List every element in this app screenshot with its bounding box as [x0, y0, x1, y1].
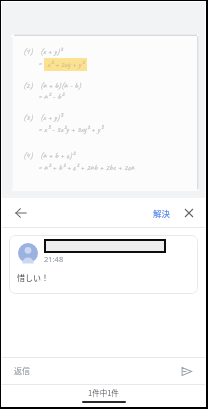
staticText: 21:48: [44, 254, 64, 264]
staticText: (x + y)³: [40, 112, 63, 123]
staticText: 惜しい！: [17, 272, 49, 284]
staticText: 1件中1件: [88, 387, 119, 398]
staticText: (a + b)(a - b): [40, 80, 81, 91]
staticText: (3): [23, 112, 33, 123]
staticText: (x + y)²: [40, 46, 63, 57]
staticText: (4): [23, 150, 33, 161]
button[interactable]: Send: [177, 362, 195, 380]
staticText: = a² + b² + c² + 2ab + 2bc + 2ca: [38, 162, 135, 173]
staticText: (a + b + c)²: [40, 150, 75, 161]
button[interactable]: 解決: [149, 203, 175, 223]
staticText: = x³ - 3x²y + 3xy² + y³: [38, 124, 103, 135]
staticText: 解決: [153, 207, 171, 219]
button[interactable]: Back: [11, 203, 31, 223]
staticText: = a² - b²: [38, 91, 64, 102]
staticText: (2): [23, 80, 33, 91]
staticText: (1): [23, 46, 33, 57]
staticText: 返信: [14, 365, 30, 377]
button[interactable]: Close: [181, 205, 197, 221]
staticText: x² + 2xy + y²: [47, 59, 84, 70]
staticText: =: [38, 58, 42, 69]
